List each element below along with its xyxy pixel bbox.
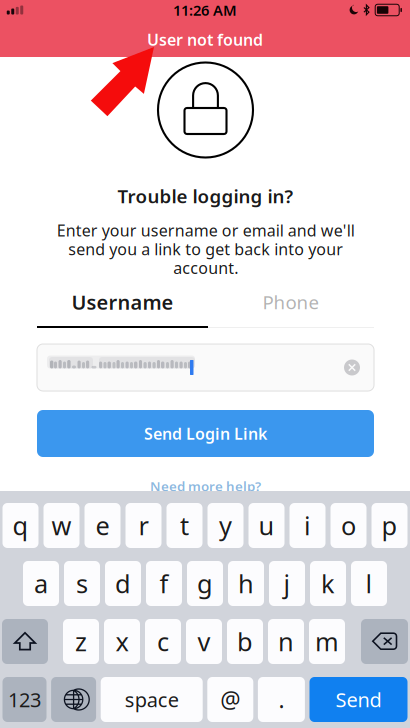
staticText: b	[237, 625, 253, 658]
staticText: k	[321, 567, 335, 600]
staticText: t	[180, 509, 189, 542]
staticText: .	[278, 684, 284, 714]
button[interactable]: Phone	[208, 286, 374, 318]
staticText: u	[258, 509, 274, 542]
staticText: g	[197, 567, 213, 600]
staticText: User not found	[147, 29, 263, 50]
button[interactable]: Send	[309, 677, 407, 722]
staticText: l	[365, 567, 372, 600]
staticText: Trouble logging in?	[117, 184, 293, 208]
button[interactable]: s	[64, 561, 100, 606]
staticText: a	[34, 567, 48, 600]
staticText: @	[220, 684, 240, 714]
button[interactable]: v	[186, 619, 222, 664]
button[interactable]: 123	[2, 677, 46, 722]
button[interactable]: Need more help?	[150, 477, 261, 495]
staticText: 11:26 AM	[173, 0, 237, 20]
staticText: z	[75, 625, 87, 658]
button[interactable]: b	[227, 619, 263, 664]
staticText: i	[304, 509, 311, 542]
button[interactable]: a	[23, 561, 59, 606]
staticText: 123	[8, 686, 41, 713]
button[interactable]: Shift	[2, 619, 48, 664]
staticText: Username	[71, 289, 173, 315]
button[interactable]: space	[101, 677, 203, 722]
button[interactable]: w	[43, 503, 79, 548]
button[interactable]: y	[207, 503, 243, 548]
staticText: s	[76, 567, 88, 600]
button[interactable]: e	[84, 503, 120, 548]
button[interactable]: Clear text	[341, 356, 363, 378]
staticText: e	[95, 509, 109, 542]
button[interactable]: k	[310, 561, 346, 606]
staticText: v	[197, 625, 210, 658]
staticText: r	[138, 509, 148, 542]
button[interactable]: .	[258, 677, 305, 722]
button[interactable]: Delete	[361, 619, 408, 664]
button[interactable]: @	[207, 677, 253, 722]
staticText: Send	[335, 686, 381, 713]
button[interactable]: Next keyboard	[51, 677, 96, 722]
staticText: q	[12, 509, 28, 542]
button[interactable]: r	[125, 503, 161, 548]
button[interactable]: j	[269, 561, 305, 606]
button[interactable]: q	[2, 503, 38, 548]
button[interactable]: l	[351, 561, 387, 606]
staticText: n	[278, 625, 294, 658]
button[interactable]: c	[145, 619, 181, 664]
button[interactable]: o	[330, 503, 366, 548]
staticText: w	[51, 509, 71, 542]
button[interactable]: Username	[37, 286, 208, 318]
button[interactable]: n	[268, 619, 304, 664]
button[interactable]: g	[187, 561, 223, 606]
button[interactable]: Send Login Link	[37, 410, 374, 457]
staticText: d	[115, 567, 131, 600]
staticText: o	[341, 509, 356, 542]
staticText: c	[157, 625, 169, 658]
button[interactable]: d	[105, 561, 141, 606]
button[interactable]: i	[289, 503, 325, 548]
button[interactable]: x	[104, 619, 140, 664]
button[interactable]: p	[371, 503, 407, 548]
staticText: h	[238, 567, 254, 600]
staticText: y	[219, 509, 232, 542]
button[interactable]: t	[166, 503, 202, 548]
staticText: f	[159, 567, 168, 600]
button[interactable]: z	[63, 619, 99, 664]
staticText: j	[283, 567, 290, 600]
staticText: Phone	[262, 290, 319, 314]
staticText: m	[315, 625, 339, 658]
staticText: Need more help?	[150, 477, 261, 495]
button[interactable]: f	[146, 561, 182, 606]
staticText: Send Login Link	[144, 423, 267, 444]
button[interactable]: h	[228, 561, 264, 606]
button[interactable]: u	[248, 503, 284, 548]
staticText: p	[381, 509, 397, 542]
staticText: x	[115, 625, 128, 658]
button[interactable]: m	[309, 619, 345, 664]
staticText: space	[125, 686, 179, 713]
staticText: Enter your username or email and we'll s…	[56, 220, 354, 278]
